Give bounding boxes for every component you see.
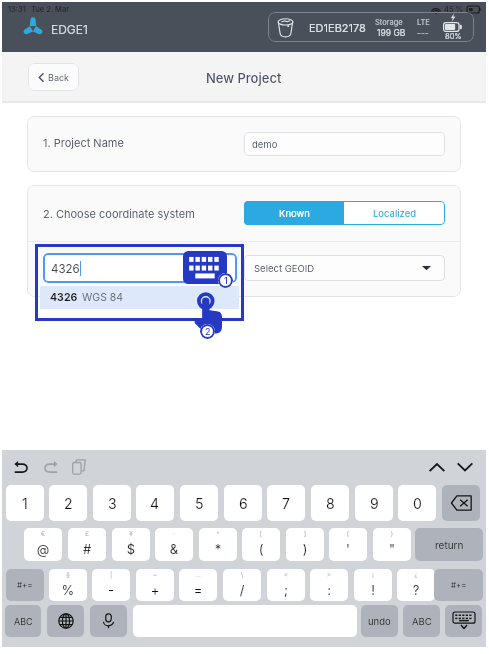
staticText: undo — [368, 616, 391, 627]
button[interactable]: | — [92, 569, 130, 601]
button[interactable]: Back — [28, 63, 79, 91]
button[interactable]: 3 — [93, 485, 131, 521]
staticText: #+= — [451, 580, 467, 590]
button[interactable]: 4326 — [43, 253, 237, 283]
button[interactable]: ABC — [403, 605, 440, 637]
staticText: * — [199, 541, 237, 557]
button[interactable]: ¥ — [112, 528, 150, 561]
staticText: ; — [267, 582, 305, 598]
button[interactable]: ~ — [136, 569, 174, 601]
button[interactable]: > — [310, 569, 348, 601]
button[interactable]: } — [373, 528, 411, 561]
staticText: : — [310, 582, 348, 598]
button[interactable]: 9 — [355, 485, 393, 521]
staticText: # — [68, 541, 106, 557]
button[interactable]: [ — [242, 528, 280, 561]
staticText: 2 — [64, 495, 73, 512]
button[interactable]: 1 — [6, 485, 44, 521]
staticText: § — [49, 571, 87, 579]
button[interactable]: … — [179, 569, 217, 601]
staticText: € — [24, 530, 62, 538]
button[interactable]: 2 — [49, 485, 87, 521]
staticText: ¥ — [112, 530, 150, 538]
staticText: 2 — [205, 326, 211, 337]
staticText: ABC — [412, 616, 432, 627]
staticText: 45 % — [444, 5, 464, 14]
button[interactable]: Backspace — [442, 485, 480, 521]
staticText: 8 — [326, 495, 335, 512]
staticText: 13:31 — [8, 5, 26, 14]
staticText: £ — [68, 530, 106, 538]
button[interactable]: ¿ — [397, 569, 435, 601]
button[interactable]: ED1EB2178 — [268, 12, 474, 42]
staticText: ~ — [136, 571, 174, 579]
button[interactable]: £ — [68, 528, 106, 561]
staticText: 1. Project Name — [43, 136, 124, 149]
staticText: 4326 — [50, 291, 78, 304]
button[interactable]: 4 — [136, 485, 174, 521]
button[interactable]: 5 — [180, 485, 218, 521]
staticText: EDGE1 — [51, 22, 88, 37]
staticText: New Project — [206, 70, 282, 86]
button[interactable]: demo — [244, 132, 445, 156]
staticText: · — [155, 530, 193, 538]
button[interactable]: ¡ — [354, 569, 392, 601]
button[interactable]: 6 — [224, 485, 262, 521]
button[interactable]: ABC — [5, 605, 41, 637]
button[interactable]: #+= — [6, 569, 44, 601]
staticText: ED1EB2178 — [309, 21, 366, 34]
button[interactable]: Dictate — [90, 605, 127, 637]
staticText: 4 — [150, 495, 160, 512]
staticText: 3 — [108, 495, 117, 512]
button[interactable]: undo — [361, 605, 398, 637]
staticText: > — [310, 571, 348, 579]
staticText: < — [267, 571, 305, 579]
staticText: … — [179, 571, 217, 579]
button[interactable]: Select GEOID — [244, 255, 445, 281]
button[interactable]: · — [155, 528, 193, 561]
staticText: 1 — [224, 275, 228, 286]
button[interactable]: § — [49, 569, 87, 601]
staticText: ABC — [14, 616, 33, 627]
staticText: Storage — [375, 18, 403, 27]
button[interactable]: 8 — [311, 485, 349, 521]
button[interactable]: 7 — [267, 485, 305, 521]
staticText: / — [223, 582, 261, 598]
staticText: Localized — [373, 208, 416, 219]
button[interactable]: 4326 — [40, 286, 239, 309]
button[interactable]: < — [267, 569, 305, 601]
button[interactable]: #+= — [434, 569, 483, 601]
staticText: \ — [223, 571, 261, 579]
staticText: % — [49, 582, 87, 598]
button[interactable]: ] — [286, 528, 324, 561]
staticText: Back — [48, 72, 70, 83]
staticText: demo — [252, 139, 278, 150]
staticText: 1 — [22, 495, 28, 512]
staticText: ^ — [199, 530, 237, 538]
button[interactable]: Known — [244, 201, 344, 225]
staticText: = — [179, 582, 217, 598]
staticText: 2. Choose coordinate system — [43, 207, 195, 220]
button[interactable]: Change language — [47, 605, 84, 637]
staticText: Select GEOID — [254, 263, 315, 274]
staticText: LTE — [417, 18, 430, 27]
button[interactable]: Localized — [344, 201, 445, 225]
staticText: --- — [417, 28, 429, 38]
button[interactable]: Hide keyboard — [445, 605, 482, 637]
staticText: WGS 84 — [82, 291, 124, 304]
staticText: 80% — [445, 32, 462, 41]
button[interactable]: { — [329, 528, 367, 561]
button[interactable]: ^ — [199, 528, 237, 561]
staticText: [ — [242, 530, 280, 538]
staticText: 5 — [195, 495, 204, 512]
button[interactable]: € — [24, 528, 62, 561]
staticText: #+= — [17, 580, 33, 590]
staticText: return — [435, 539, 464, 551]
staticText: 4326 — [51, 262, 80, 276]
button[interactable]: \ — [223, 569, 261, 601]
staticText: 199 GB — [377, 28, 406, 38]
button[interactable]: return — [415, 528, 483, 561]
staticText: 7 — [282, 495, 290, 512]
button[interactable]: 0 — [398, 485, 436, 521]
